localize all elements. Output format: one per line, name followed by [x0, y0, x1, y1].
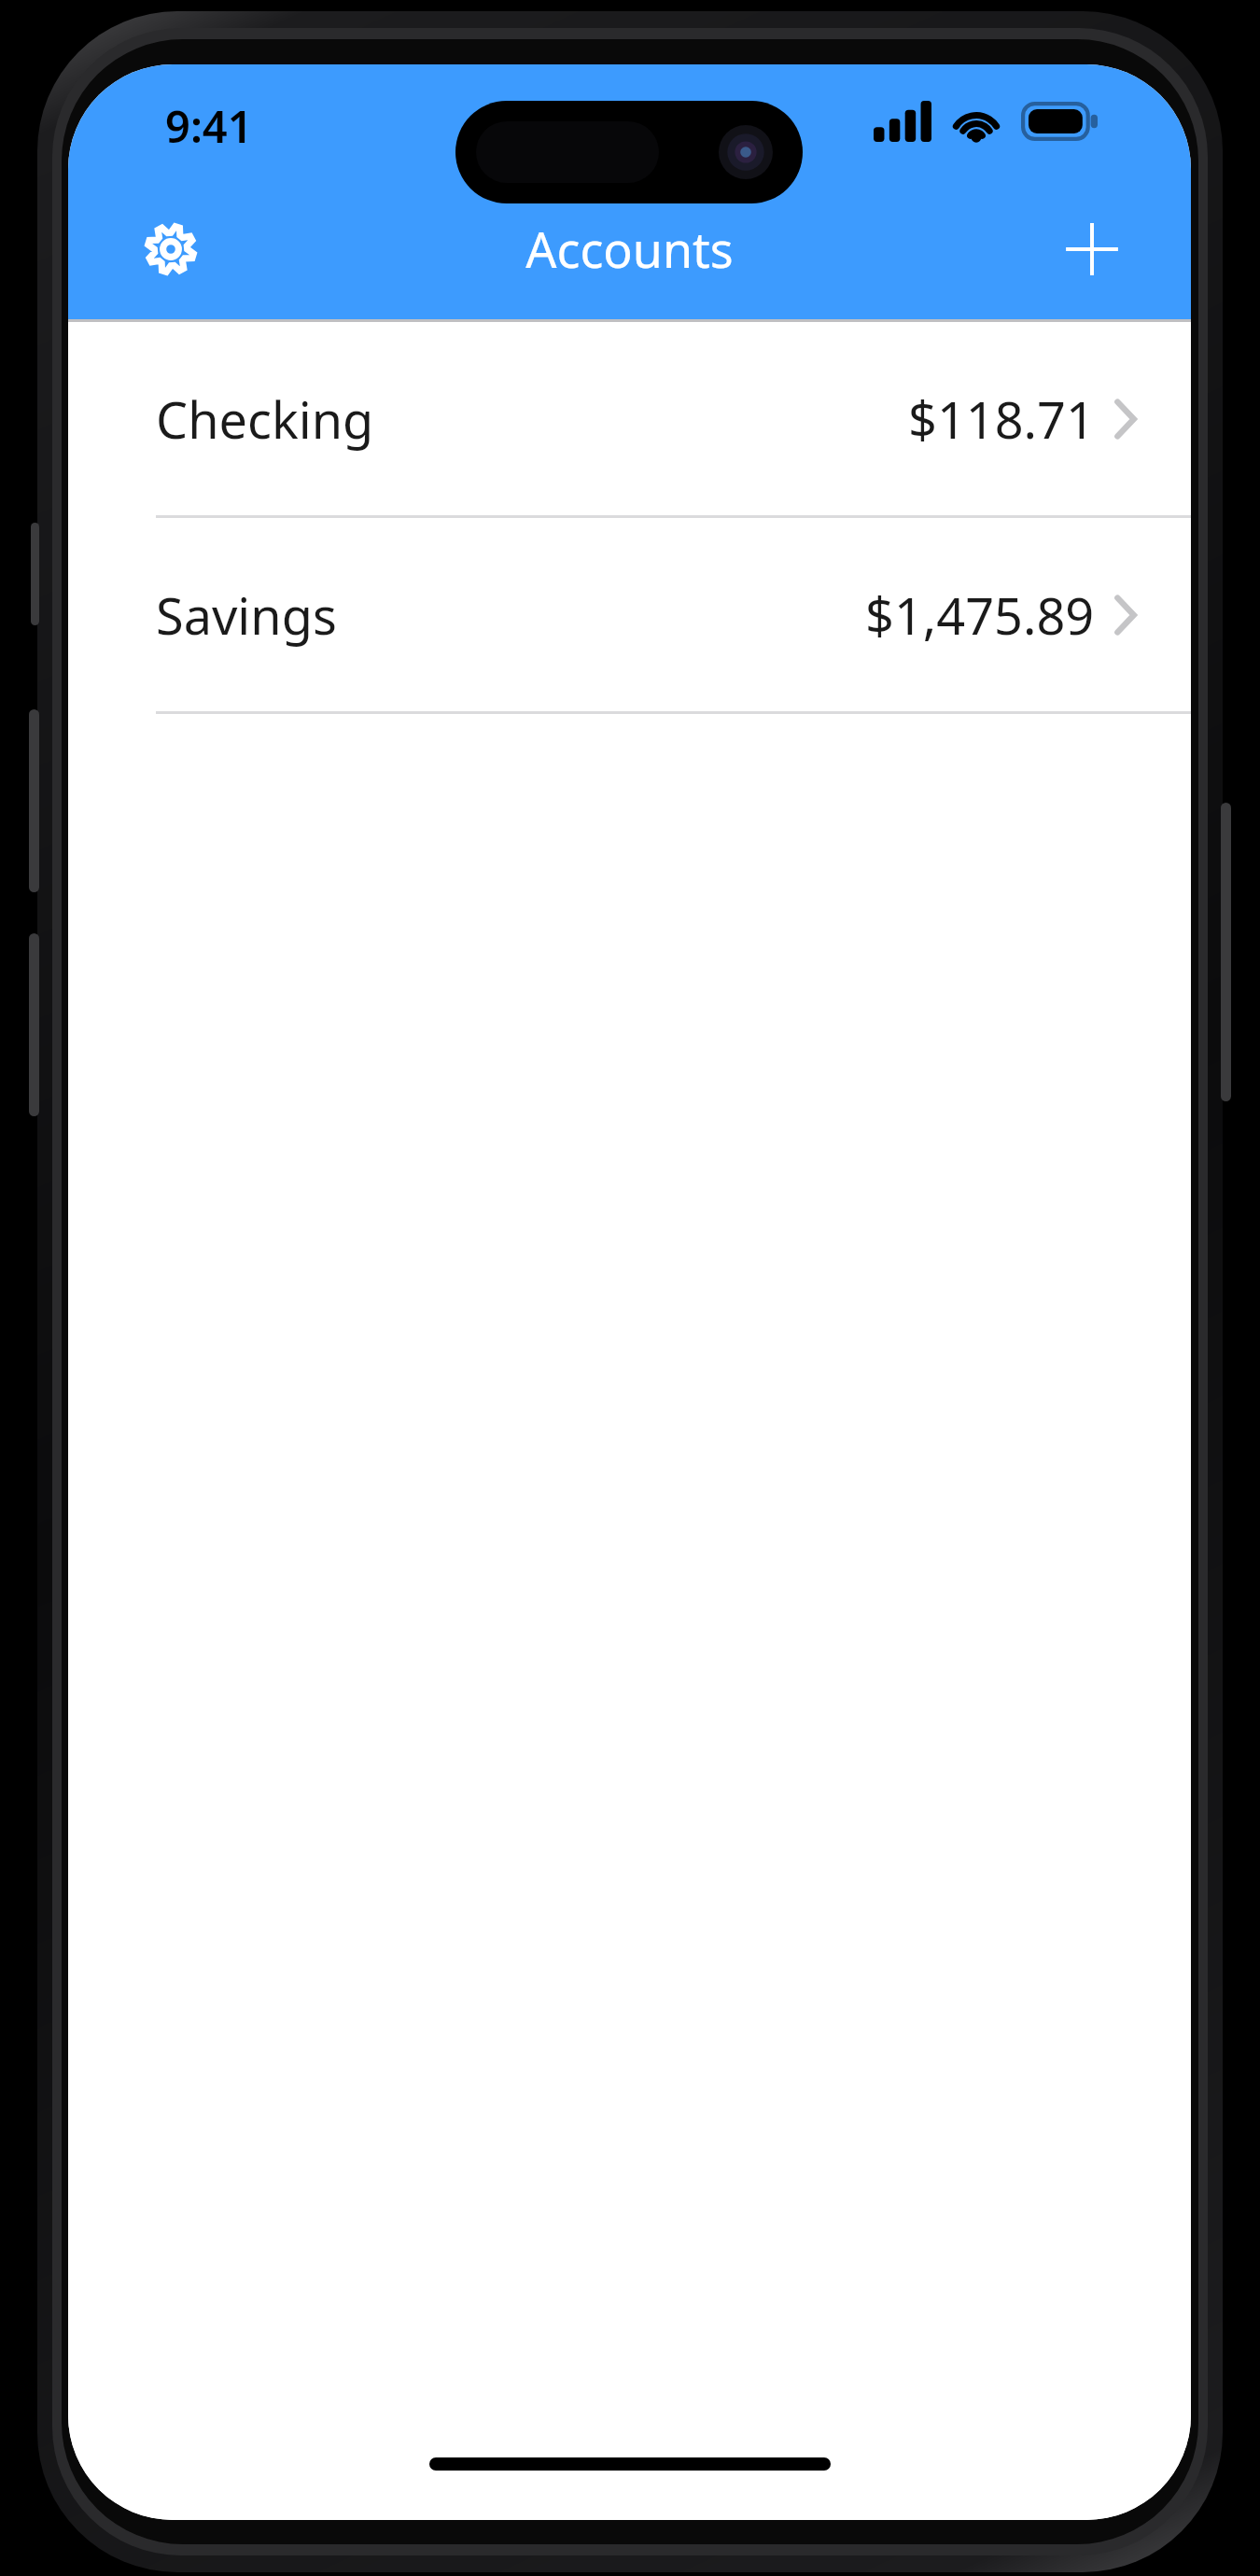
staticText: Accounts — [525, 216, 734, 282]
button[interactable]: Checking — [68, 322, 1191, 515]
button[interactable]: Settings — [126, 204, 216, 294]
staticText: 9:41 — [165, 96, 253, 156]
button[interactable]: Savings — [68, 518, 1191, 711]
staticText: $118.71 — [908, 385, 1095, 454]
staticText: Savings — [156, 581, 337, 650]
staticText: $1,475.89 — [865, 581, 1095, 650]
staticText: Checking — [156, 385, 374, 454]
button[interactable]: Add account — [1047, 204, 1137, 294]
